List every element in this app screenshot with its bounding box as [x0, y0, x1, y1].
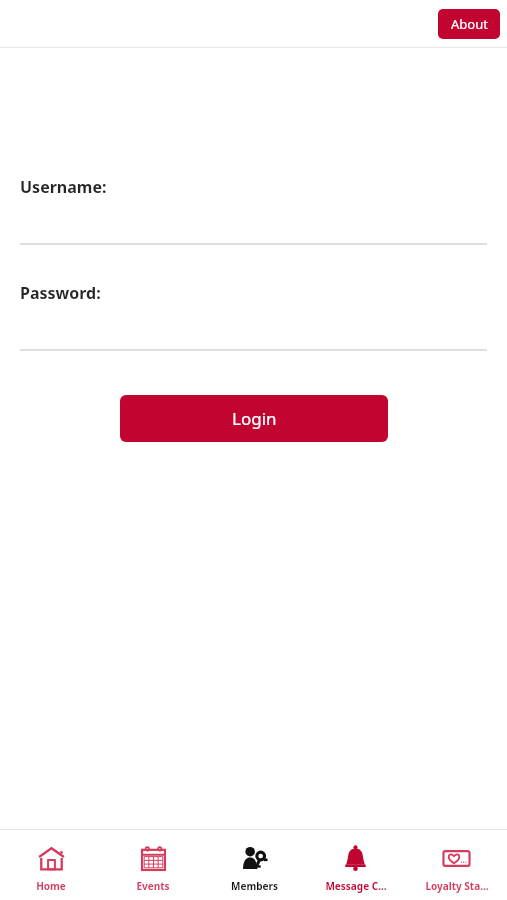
staticText: Events — [136, 879, 170, 893]
staticText: Home — [36, 879, 66, 893]
button[interactable]: Login — [120, 395, 388, 442]
button[interactable]: Home — [0, 830, 102, 900]
staticText: Message C... — [325, 879, 387, 893]
button[interactable]: About — [438, 9, 500, 39]
staticText: Password: — [20, 282, 101, 304]
button[interactable]: Members — [204, 830, 305, 900]
staticText: Username: — [20, 176, 107, 198]
staticText: Members — [231, 879, 278, 893]
staticText: About — [451, 15, 488, 33]
staticText: Login — [232, 407, 277, 430]
button[interactable]: Events — [102, 830, 204, 900]
button[interactable]: Message Center — [305, 830, 406, 900]
button[interactable]: Loyalty Status — [406, 830, 507, 900]
staticText: Loyalty Sta... — [425, 879, 489, 893]
